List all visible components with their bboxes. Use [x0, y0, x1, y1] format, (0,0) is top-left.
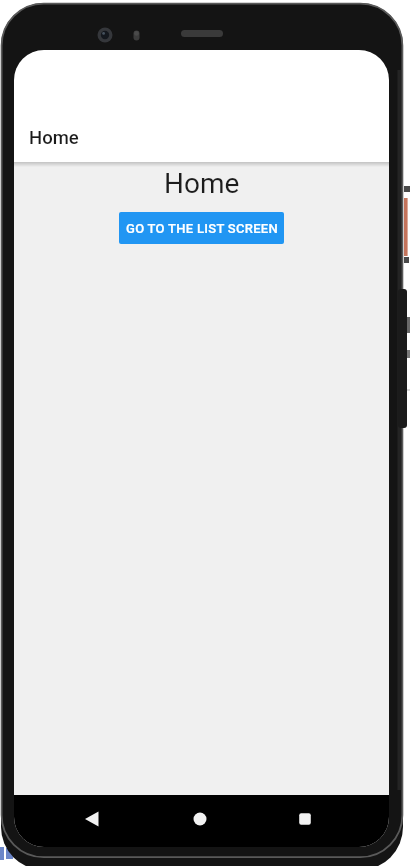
staticText: GO TO THE LIST SCREEN	[126, 221, 278, 236]
button[interactable]: GO TO THE LIST SCREEN	[119, 212, 284, 244]
button[interactable]	[68, 795, 116, 843]
staticText: Home	[29, 127, 79, 149]
staticText: Home	[164, 167, 240, 200]
button[interactable]	[281, 795, 329, 843]
button[interactable]	[176, 795, 224, 843]
